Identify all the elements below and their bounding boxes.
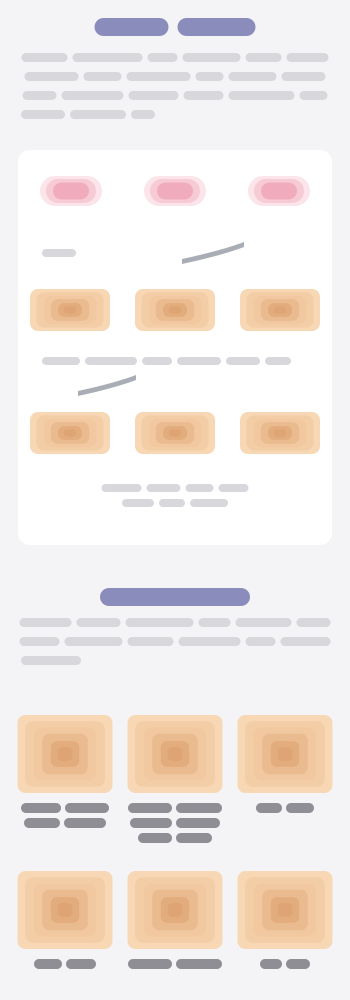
button[interactable]: Photo 6 bbox=[240, 412, 320, 454]
button[interactable]: Item 1 bbox=[17, 715, 112, 863]
button[interactable]: Item 5 bbox=[127, 871, 222, 989]
button[interactable]: Item 6 bbox=[237, 871, 332, 989]
button[interactable]: Photo 2 bbox=[135, 289, 215, 331]
button[interactable]: Item 3 bbox=[237, 715, 332, 863]
button[interactable]: Item 2 bbox=[127, 715, 222, 863]
button[interactable]: Item 4 bbox=[17, 871, 112, 989]
button[interactable]: Photo 3 bbox=[240, 289, 320, 331]
button[interactable]: Photo 1 bbox=[30, 289, 110, 331]
button[interactable]: Photo 5 bbox=[135, 412, 215, 454]
button[interactable]: Photo 4 bbox=[30, 412, 110, 454]
